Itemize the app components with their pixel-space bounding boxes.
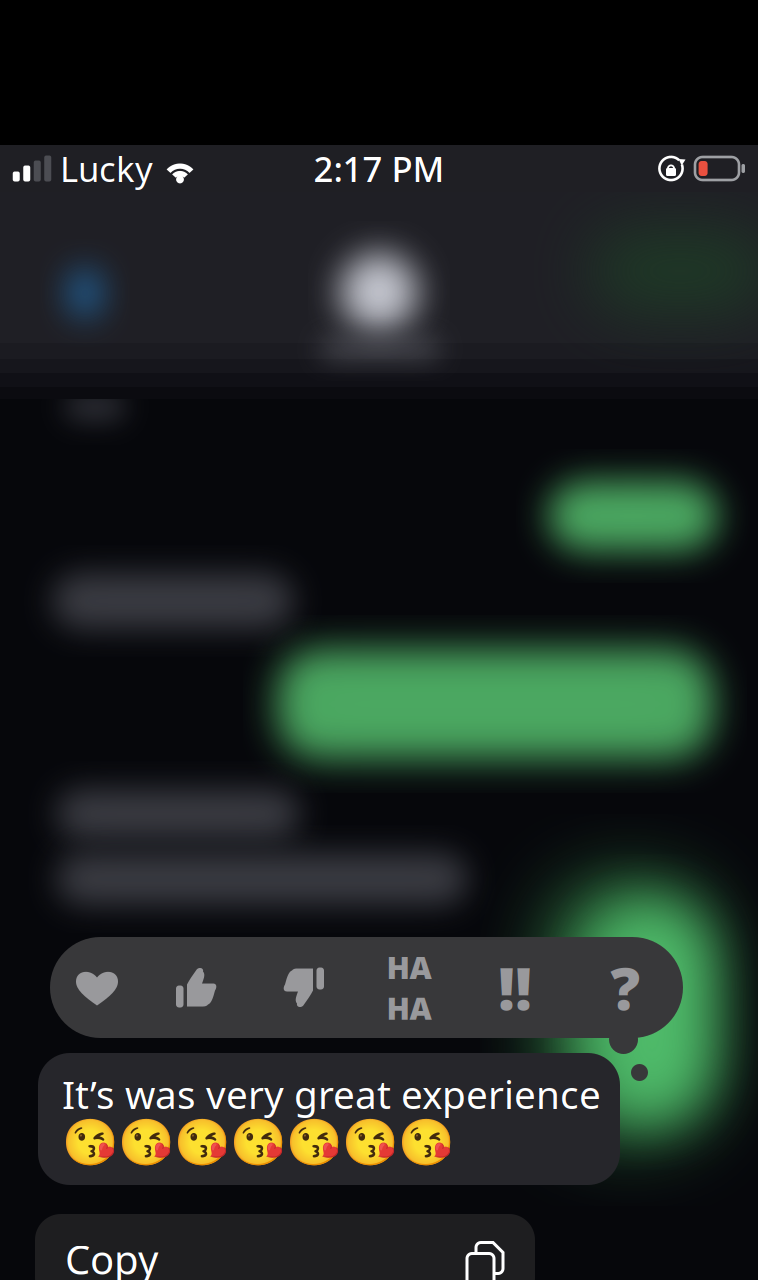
staticText: Lucky (60, 145, 153, 191)
staticText: !! (498, 948, 532, 1026)
button[interactable]: Haha (356, 937, 462, 1038)
button[interactable]: Exclamation (462, 937, 568, 1038)
staticText: 😘😘😘😘😘😘😘 (62, 1117, 454, 1169)
staticText: ? (610, 948, 640, 1026)
staticText: HA HA (386, 947, 431, 1028)
staticText: 2:17 PM (313, 145, 444, 191)
staticText: Copy (65, 1232, 158, 1280)
button[interactable]: Thumbs up (144, 937, 250, 1038)
button[interactable]: Copy (35, 1214, 535, 1280)
button[interactable]: Thumbs down (250, 937, 356, 1038)
button[interactable]: Love (50, 937, 144, 1038)
button[interactable]: Question mark (568, 937, 683, 1038)
staticText: It’s was very great experience (62, 1068, 601, 1120)
